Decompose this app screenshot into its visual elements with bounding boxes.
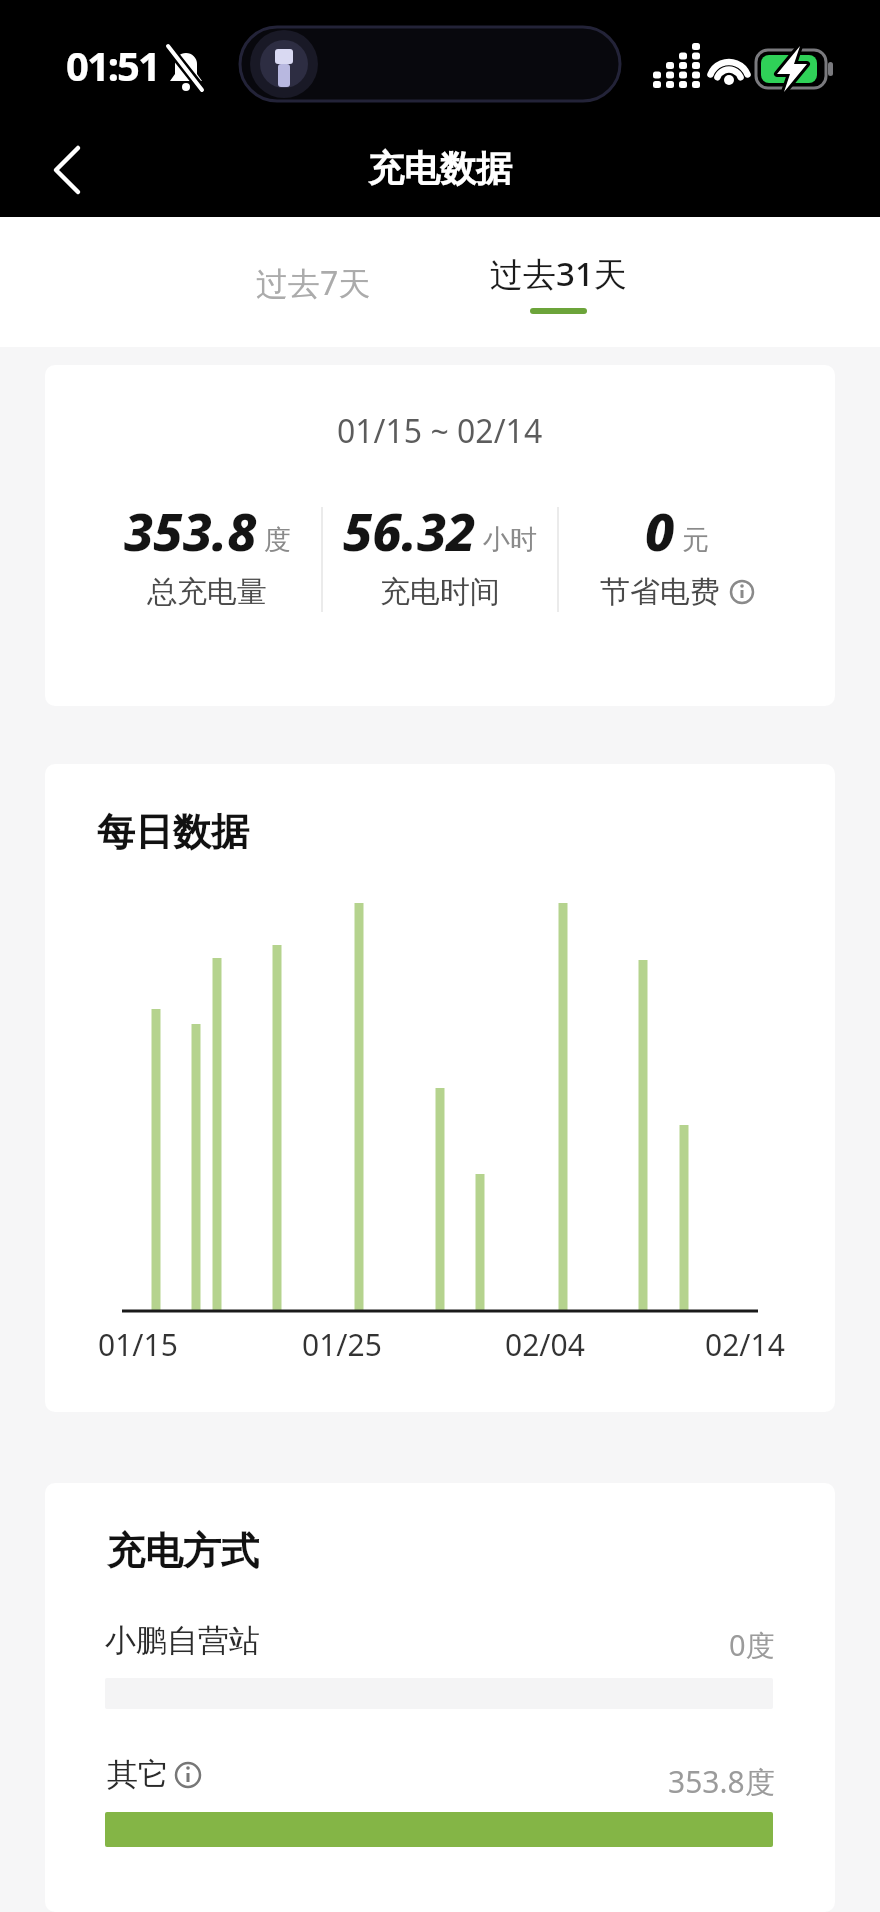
staticText: 01/15 ~ 02/14: [337, 409, 543, 453]
button[interactable]: [730, 580, 754, 604]
staticText: 01:51: [66, 38, 159, 92]
staticText: 02/04: [505, 1324, 585, 1365]
staticText: 元: [682, 523, 709, 557]
staticText: 每日数据: [97, 808, 249, 856]
staticText: 其它: [107, 1755, 169, 1794]
staticText: 小时: [483, 523, 537, 557]
staticText: 0度: [729, 1625, 775, 1665]
staticText: 充电方式: [107, 1527, 259, 1575]
staticText: 度: [264, 523, 291, 557]
staticText: 01/25: [302, 1324, 382, 1365]
staticText: 0: [645, 495, 675, 566]
staticText: 02/14: [705, 1324, 785, 1365]
staticText: 01/15: [98, 1324, 178, 1365]
staticText: 353.8度: [668, 1761, 775, 1802]
staticText: 充电数据: [368, 146, 512, 191]
staticText: 56.32: [343, 495, 476, 566]
button[interactable]: 过去7天: [213, 255, 413, 311]
staticText: 小鹏自营站: [105, 1621, 260, 1660]
button[interactable]: [166, 1753, 210, 1797]
staticText: 353.8: [124, 495, 257, 566]
button[interactable]: [30, 132, 106, 208]
button[interactable]: 过去31天: [458, 251, 658, 341]
staticText: 过去7天: [256, 261, 371, 305]
staticText: 充电时间: [380, 573, 500, 611]
staticText: 节省电费: [600, 573, 720, 611]
staticText: 总充电量: [147, 573, 267, 611]
staticText: 过去31天: [490, 251, 627, 296]
